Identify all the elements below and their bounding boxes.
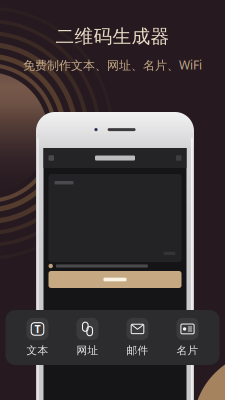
staticText: 名片 [176,344,198,357]
staticText: 二维码生成器 [55,25,169,48]
button[interactable]: T [16,318,58,357]
button[interactable]: 网址 [66,318,108,357]
button[interactable]: 邮件 [116,318,158,357]
staticText: 免费制作文本、网址、名片、WiFi [23,57,202,73]
button[interactable]: 名片 [166,318,208,357]
staticText: 邮件 [126,344,148,357]
staticText: T [34,322,40,336]
staticText: 文本 [26,344,48,357]
staticText: 网址 [76,344,98,357]
